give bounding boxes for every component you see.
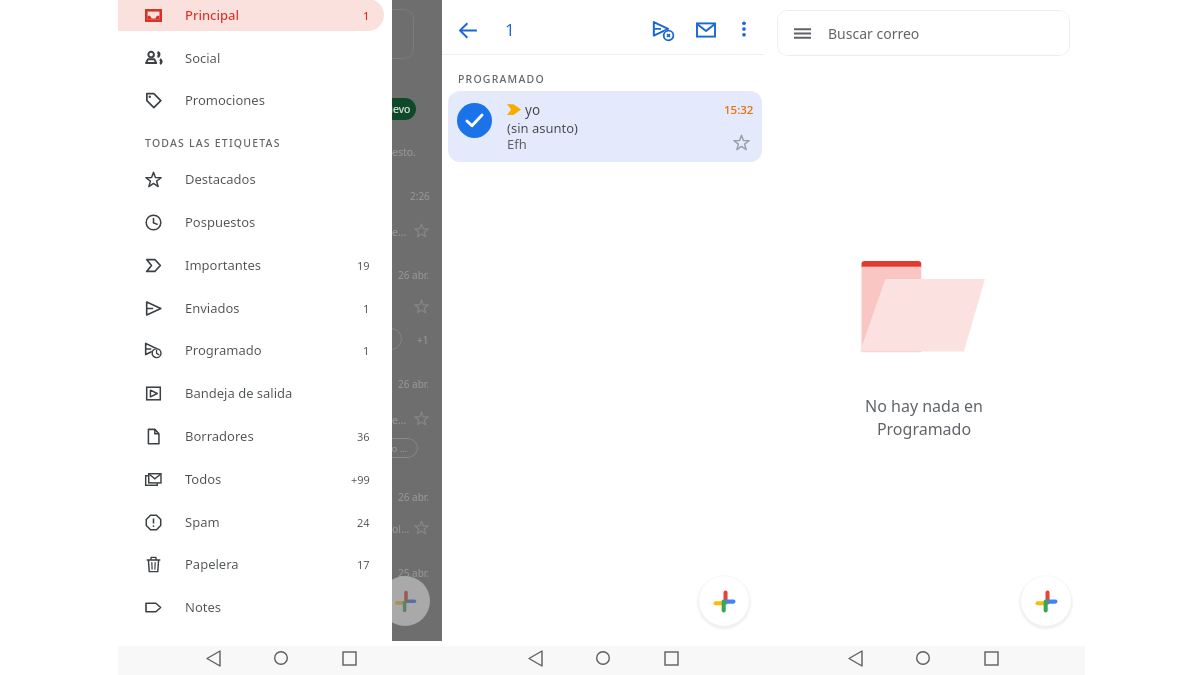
staticText: TODAS LAS ETIQUETAS: [145, 136, 281, 150]
button[interactable]: Home: [268, 645, 294, 671]
staticText: 19: [357, 258, 370, 273]
staticText: 2:26: [410, 189, 430, 203]
button[interactable]: Social: [118, 42, 384, 74]
button[interactable]: Destacados: [118, 163, 384, 195]
button[interactable]: Back: [522, 645, 548, 671]
button[interactable]: Compose: [1021, 576, 1071, 626]
button[interactable]: Recent apps: [336, 645, 362, 671]
button[interactable]: Programado: [118, 334, 384, 366]
staticText: 26 abr.: [398, 490, 430, 504]
button[interactable]: yo: [448, 91, 762, 162]
button[interactable]: Compose: [699, 576, 749, 626]
staticText: Programado: [185, 341, 262, 359]
button[interactable]: Recent apps: [978, 645, 1004, 671]
button[interactable]: Home: [910, 645, 936, 671]
staticText: 1: [363, 301, 370, 316]
staticText: Notes: [185, 598, 221, 616]
staticText: Importantes: [185, 256, 262, 274]
button[interactable]: Notes: [118, 591, 384, 623]
staticText: 17: [357, 557, 370, 572]
staticText: 26 abr.: [398, 377, 430, 391]
staticText: esto.: [392, 145, 416, 159]
staticText: Papelera: [185, 555, 239, 573]
button[interactable]: Recent apps: [658, 645, 684, 671]
button[interactable]: Bandeja de salida: [118, 377, 384, 409]
button[interactable]: Promociones: [118, 84, 384, 116]
staticText: Bandeja de salida: [185, 384, 293, 402]
staticText: Buscar correo: [828, 24, 920, 43]
staticText: nuevo: [392, 102, 411, 116]
staticText: PROGRAMADO: [458, 72, 545, 86]
button[interactable]: Papelera: [118, 548, 384, 580]
button[interactable]: Back: [842, 645, 868, 671]
button[interactable]: Importantes: [118, 249, 384, 281]
staticText: Enviados: [185, 299, 240, 317]
staticText: Promociones: [185, 91, 265, 109]
staticText: io …: [392, 442, 408, 455]
button[interactable]: Buscar correo: [777, 10, 1070, 56]
button[interactable]: Principal: [118, 0, 384, 31]
staticText: ol…: [392, 522, 410, 536]
button[interactable]: Home: [590, 645, 616, 671]
staticText: Destacados: [185, 170, 256, 188]
button[interactable]: Spam: [118, 506, 384, 538]
staticText: 1: [363, 343, 370, 358]
staticText: 25 abr.: [398, 566, 430, 580]
button[interactable]: More options: [729, 14, 759, 44]
button[interactable]: Star: [733, 134, 750, 151]
button[interactable]: Back: [200, 645, 226, 671]
staticText: (sin asunto): [507, 119, 578, 137]
staticText: 26 abr.: [398, 268, 430, 282]
staticText: Pospuestos: [185, 213, 256, 231]
staticText: Borradores: [185, 427, 254, 445]
button[interactable]: Cancel scheduled send: [646, 13, 680, 47]
button[interactable]: Back: [452, 14, 484, 46]
staticText: +99: [351, 472, 370, 487]
staticText: No hay nada en Programado: [865, 395, 983, 439]
staticText: yo: [525, 101, 541, 119]
staticText: Principal: [185, 6, 239, 24]
staticText: 1: [363, 8, 370, 23]
button[interactable]: Enviados: [118, 292, 384, 324]
staticText: 15:32: [724, 102, 754, 118]
staticText: Social: [185, 49, 221, 67]
staticText: 36: [357, 429, 370, 444]
button[interactable]: Todos: [118, 463, 384, 495]
staticText: e…: [392, 225, 407, 239]
staticText: Todos: [185, 470, 222, 488]
staticText: 24: [357, 515, 370, 530]
staticText: 1: [505, 18, 515, 41]
staticText: Spam: [185, 513, 220, 531]
button[interactable]: Borradores: [118, 420, 384, 452]
button[interactable]: Mark as unread: [689, 13, 723, 47]
staticText: +1: [417, 333, 429, 347]
staticText: e…: [392, 413, 407, 427]
staticText: Efh: [507, 135, 527, 153]
button[interactable]: Pospuestos: [118, 206, 384, 238]
